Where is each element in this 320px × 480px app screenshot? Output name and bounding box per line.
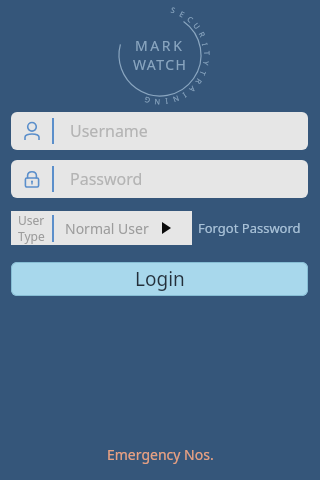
button[interactable]: Forgot Password [198,211,310,245]
staticText: MARK [135,36,185,55]
staticText: Normal User [65,219,149,238]
staticText: I [181,90,188,100]
button[interactable]: Emergency Nos. [107,445,214,464]
staticText: Login [135,266,185,292]
button[interactable]: Login [11,262,308,296]
staticText: I [164,96,169,106]
button[interactable]: User [11,211,192,245]
staticText: E [178,9,187,20]
staticText: R [197,30,208,39]
staticText: Password [70,168,143,190]
staticText: S [170,5,177,16]
other: Username [22,121,42,141]
staticText: Forgot Password [198,219,301,237]
staticText: Y [201,60,211,67]
staticText: C [185,14,196,25]
staticText: WATCH [133,55,188,74]
staticText: G [143,94,151,106]
staticText: Emergency Nos. [107,445,214,464]
staticText: U [191,21,203,31]
button[interactable]: Username [11,112,308,150]
staticText: N [154,97,160,107]
button[interactable]: Password [11,160,308,198]
staticText: T [197,69,208,78]
staticText: Username [70,120,148,142]
staticText: T [202,51,212,56]
staticText: N [171,93,181,105]
other: Password [22,169,42,189]
staticText: A [187,84,198,95]
staticText: R [193,76,204,86]
staticText: User [18,212,45,228]
staticText: Type [18,228,45,244]
staticText: I [200,42,210,47]
